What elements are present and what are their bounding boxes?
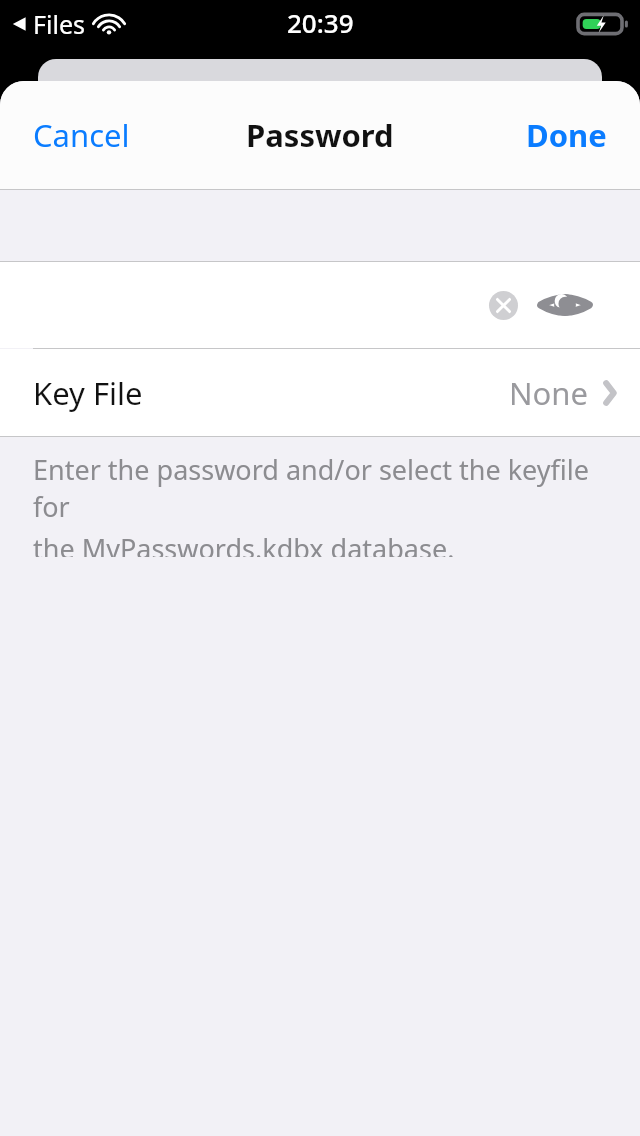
button[interactable]: Clear text [0,262,640,348]
staticText: the MyPasswords.kdbx database. [33,530,455,557]
button[interactable]: Show password [537,285,593,325]
staticText: None [509,372,588,414]
button[interactable]: Done [493,94,640,176]
button[interactable]: Clear text [483,285,523,325]
button[interactable]: Key File [0,349,640,436]
staticText: Done [526,114,607,156]
staticText: Password [246,114,394,156]
button[interactable]: Cancel [0,94,163,176]
staticText: Enter the password and/or select the key… [33,451,610,525]
staticText: Key File [33,372,143,414]
staticText: Cancel [33,114,130,156]
staticText: Files [33,7,85,41]
staticText: 20:39 [287,5,354,40]
